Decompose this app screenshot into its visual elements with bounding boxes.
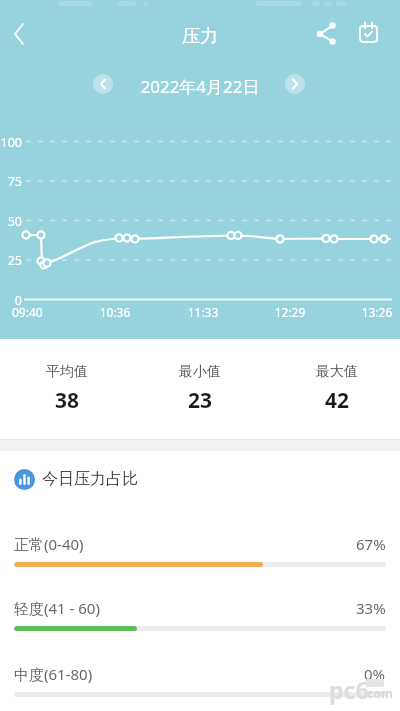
staticText: 09:40 <box>12 304 52 320</box>
staticText: 11:33 <box>183 304 223 320</box>
button[interactable]: 今日压力占比 <box>14 465 138 493</box>
staticText: 10:36 <box>95 304 135 320</box>
staticText: .com <box>364 685 393 701</box>
staticText: 0 <box>0 292 22 309</box>
staticText: 今日压力占比 <box>42 469 138 489</box>
staticText: 50 <box>0 213 22 230</box>
staticText: 最小值 <box>179 363 221 381</box>
staticText: 正常(0-40) <box>14 534 84 554</box>
button[interactable]: 最大值 <box>277 339 397 439</box>
staticText: 0% <box>364 664 386 684</box>
staticText: 38 <box>55 386 80 415</box>
staticText: 13:26 <box>357 304 397 320</box>
button[interactable]: 平均值 <box>7 339 127 439</box>
staticText: 中度(61-80) <box>14 664 93 684</box>
button[interactable] <box>356 20 382 46</box>
button[interactable] <box>312 21 338 47</box>
button[interactable]: 中度(61-80) <box>0 664 400 684</box>
staticText: 最大值 <box>316 363 358 381</box>
button[interactable] <box>285 74 305 94</box>
staticText: 平均值 <box>46 363 88 381</box>
button[interactable] <box>93 74 113 94</box>
staticText: 100 <box>0 134 22 151</box>
staticText: pc6 <box>329 674 369 705</box>
staticText: 压力 <box>0 25 400 48</box>
staticText: 轻度(41 - 60) <box>14 598 100 618</box>
button[interactable]: 最小值 <box>140 339 260 439</box>
staticText: 23 <box>188 386 213 415</box>
staticText: 25 <box>0 252 22 269</box>
staticText: 12:29 <box>270 304 310 320</box>
staticText: 42 <box>325 386 350 415</box>
button[interactable] <box>6 24 34 52</box>
staticText: 67% <box>356 534 386 554</box>
staticText: 75 <box>0 173 22 190</box>
button[interactable]: 正常(0-40) <box>0 534 400 554</box>
staticText: 33% <box>356 598 386 618</box>
button[interactable]: 轻度(41 - 60) <box>0 598 400 618</box>
button[interactable]: 2022年4月22日 <box>0 75 400 98</box>
